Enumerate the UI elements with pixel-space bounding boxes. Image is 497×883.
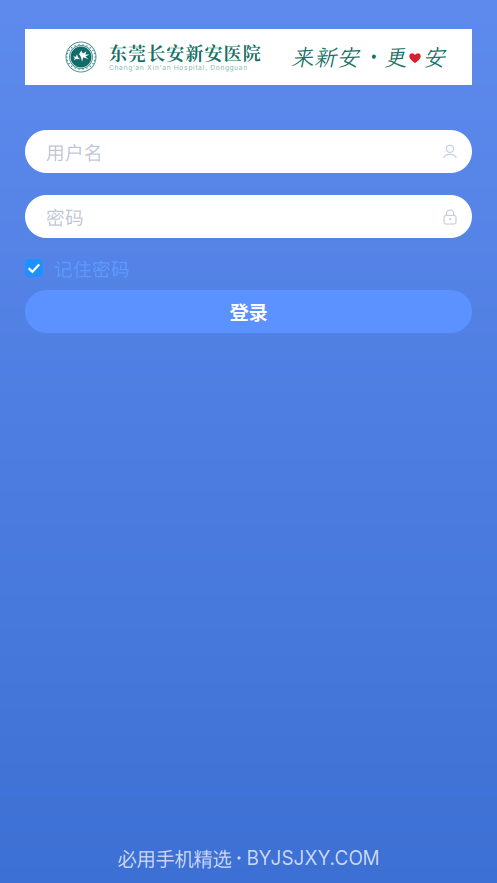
button[interactable]: 用户名 (25, 130, 472, 173)
staticText: 登录 (229, 297, 267, 325)
button[interactable]: 记住密码 (25, 259, 472, 277)
staticText: 用户名 (46, 138, 103, 165)
staticText: Chang'an Xin'an Hospital, Dongguan (109, 63, 247, 72)
staticText: 来新安 · 更 (291, 42, 407, 72)
staticText: 必用手机精选 (117, 844, 231, 872)
staticText: 记住密码 (54, 254, 130, 281)
staticText: 安 (423, 42, 446, 72)
button[interactable]: 登录 (25, 290, 472, 333)
staticText: BYJSJXY.COM (247, 846, 380, 869)
staticText: 密码 (46, 203, 84, 230)
button[interactable]: 密码 (25, 195, 472, 238)
staticText: 东莞长安新安医院 (109, 40, 261, 65)
